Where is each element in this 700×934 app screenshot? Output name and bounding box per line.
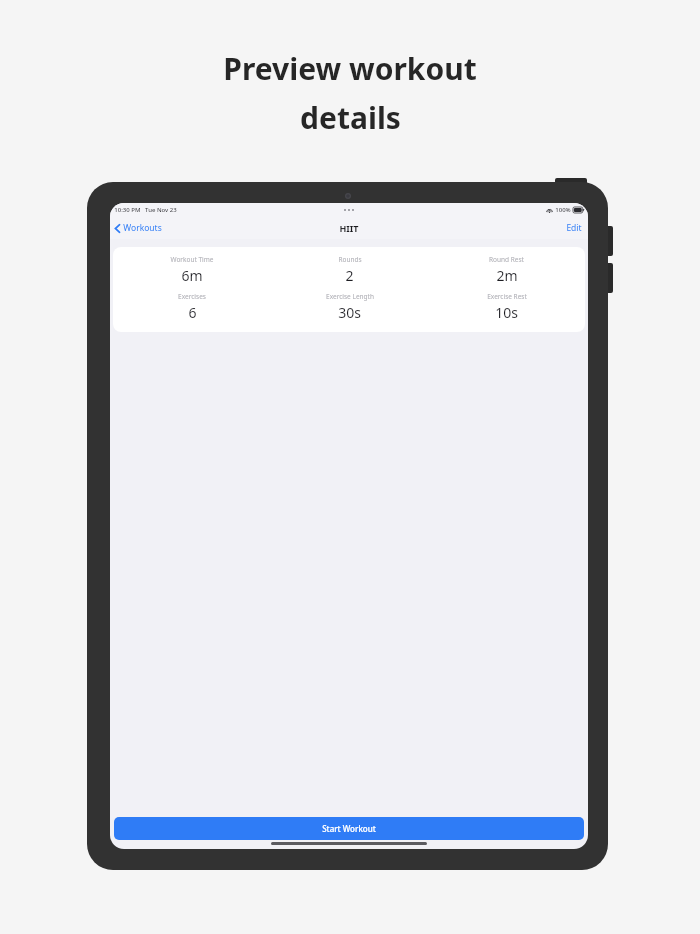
staticText: 10:30 PM Tue Nov 23 xyxy=(114,206,177,214)
staticText: details xyxy=(300,97,401,138)
staticText: Edit xyxy=(566,222,582,234)
staticText: Exercise Length xyxy=(326,292,374,301)
staticText: 100% xyxy=(555,206,571,214)
staticText: 2m xyxy=(496,266,518,285)
staticText: 6 xyxy=(188,303,197,322)
button[interactable]: Workouts xyxy=(110,219,167,237)
staticText: Workouts xyxy=(123,222,162,234)
staticText: 2 xyxy=(345,266,354,285)
button[interactable]: Edit xyxy=(560,219,588,237)
button[interactable]: Workout Time xyxy=(113,247,585,332)
staticText: 10s xyxy=(495,303,518,322)
staticText: Preview workout xyxy=(223,48,477,89)
staticText: 6m xyxy=(181,266,203,285)
staticText: HIIT xyxy=(339,222,359,234)
staticText: Start Workout xyxy=(322,823,376,834)
staticText: 30s xyxy=(338,303,361,322)
staticText: Rounds xyxy=(338,255,362,264)
staticText: Exercises xyxy=(178,292,206,301)
staticText: Round Rest xyxy=(489,255,524,264)
staticText: Workout Time xyxy=(170,255,214,264)
button[interactable]: Start Workout xyxy=(114,817,584,840)
staticText: Exercise Rest xyxy=(487,292,527,301)
